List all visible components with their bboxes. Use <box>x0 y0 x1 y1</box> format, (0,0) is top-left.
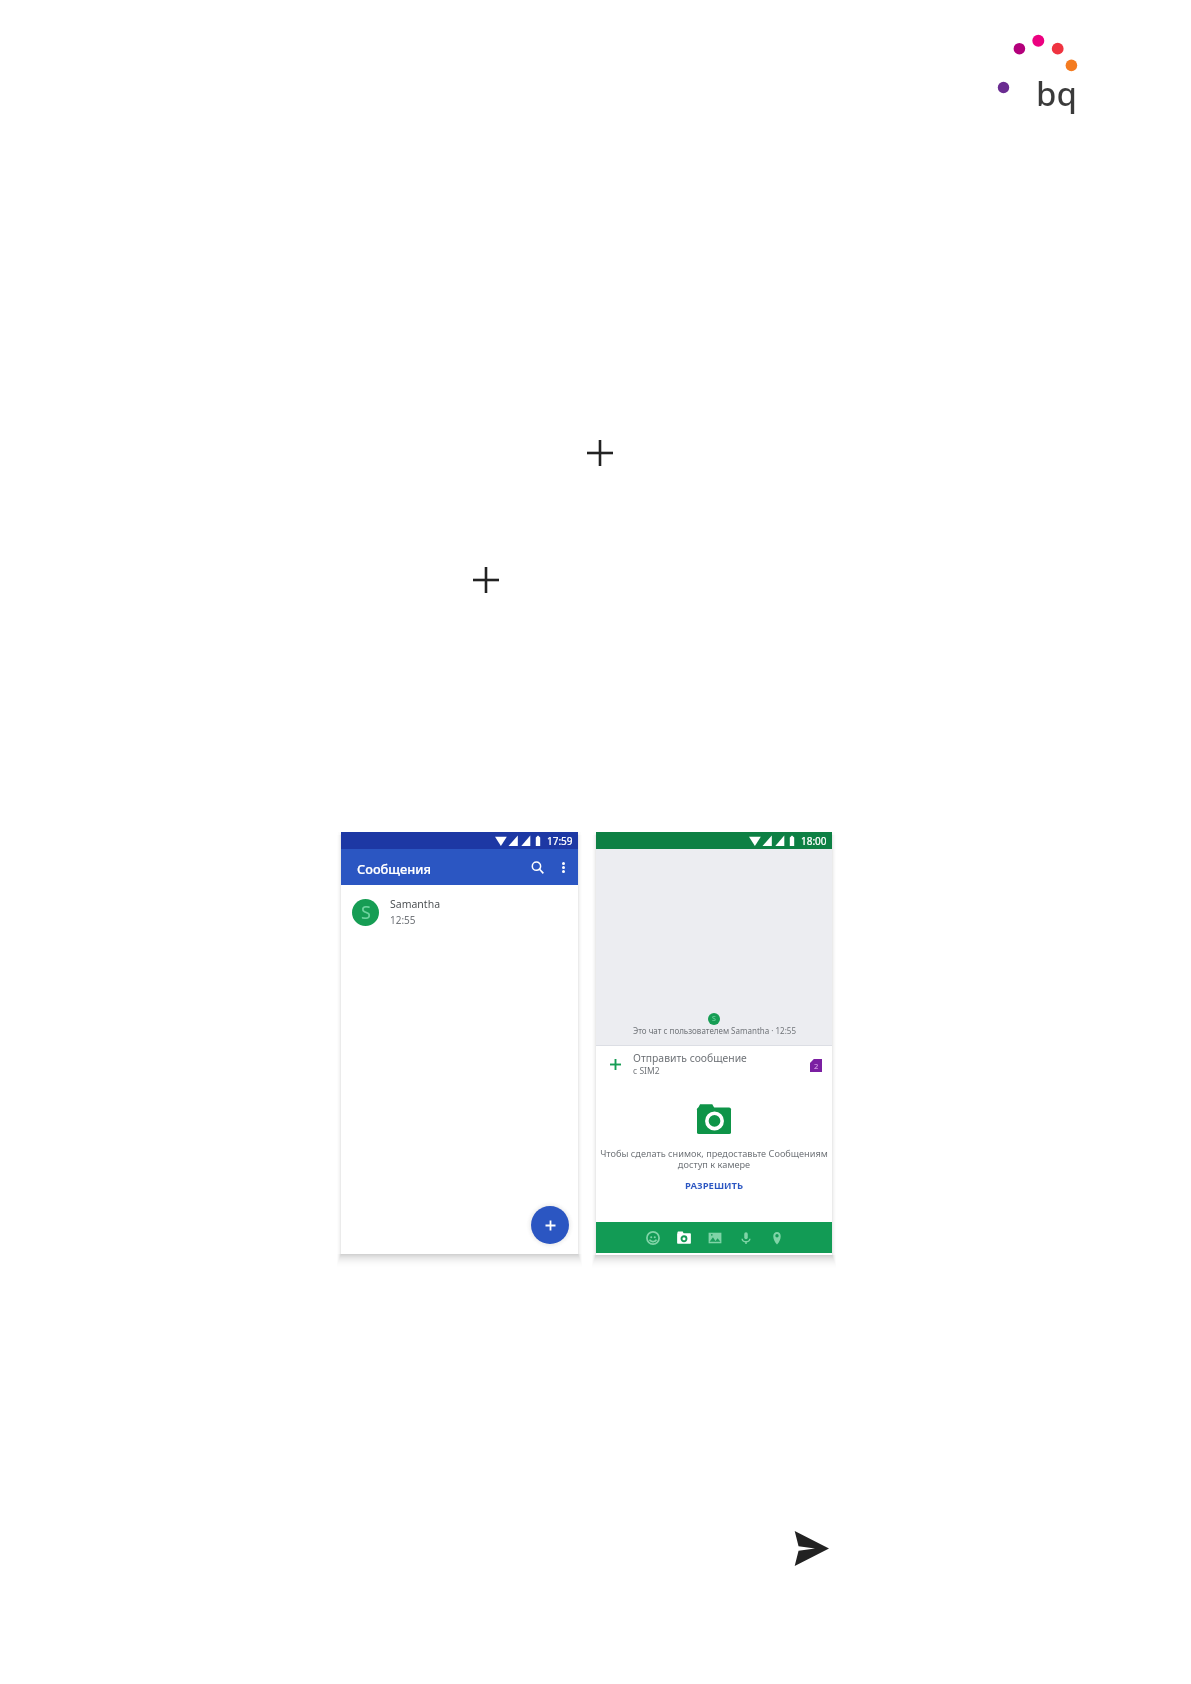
staticText: 18:00 <box>801 834 827 848</box>
button[interactable]: Search <box>524 854 550 880</box>
staticText: РАЗРЕШИТЬ <box>685 1179 744 1192</box>
staticText: Отправить сообщение <box>633 1051 747 1065</box>
button[interactable]: SIM 2 <box>810 1059 822 1072</box>
staticText: Samantha <box>390 897 441 911</box>
staticText: 2 <box>814 1061 819 1071</box>
staticText: Сообщения <box>357 860 431 877</box>
button[interactable]: New conversation <box>531 1206 569 1244</box>
staticText: с SIM2 <box>633 1065 660 1077</box>
button[interactable]: More options <box>551 855 575 879</box>
button[interactable]: Camera <box>668 1222 699 1253</box>
button[interactable]: Voice message <box>730 1222 761 1253</box>
staticText: Чтобы сделать снимок, предоставьте Сообщ… <box>600 1147 828 1170</box>
button[interactable]: Gallery <box>699 1222 730 1253</box>
button[interactable]: Location <box>761 1222 792 1253</box>
staticText: S <box>361 900 371 925</box>
button[interactable]: S <box>341 885 578 939</box>
staticText: 12:55 <box>390 913 416 927</box>
staticText: S <box>712 1014 716 1024</box>
staticText: 17:59 <box>547 834 573 848</box>
button[interactable]: РАЗРЕШИТЬ <box>675 1176 754 1195</box>
button[interactable]: Emoji <box>637 1222 668 1253</box>
button[interactable]: Отправить сообщение <box>596 1046 832 1082</box>
staticText: bq <box>1036 71 1077 116</box>
staticText: Это чат с пользователем Samantha · 12:55 <box>633 1025 796 1036</box>
